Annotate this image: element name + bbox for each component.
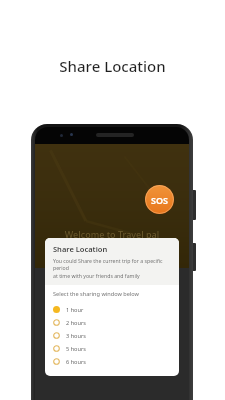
button[interactable]: 6 hours (45, 355, 179, 368)
staticText: Welcome to Travel pal (35, 228, 189, 240)
staticText: 1 hour (66, 306, 84, 314)
staticText: 5 hours (66, 345, 86, 353)
staticText: You could Share the current trip for a s… (53, 257, 171, 271)
staticText: Select the sharing window below (53, 290, 140, 298)
staticText: Share Location (0, 56, 225, 76)
button[interactable]: 5 hours (45, 342, 179, 355)
staticText: Share Location (53, 244, 108, 254)
staticText: 3 hours (66, 332, 86, 340)
button[interactable]: 1 hour (45, 303, 179, 316)
button[interactable]: 2 hours (45, 316, 179, 329)
staticText: Share (51, 306, 76, 318)
staticText: 6 hours (66, 358, 86, 366)
button[interactable]: 3 hours (45, 329, 179, 342)
staticText: SOS (151, 194, 168, 206)
staticText: at time with your friends and family (53, 272, 140, 279)
staticText: 2 hours (66, 319, 86, 327)
button[interactable]: SOS emergency (145, 185, 174, 214)
